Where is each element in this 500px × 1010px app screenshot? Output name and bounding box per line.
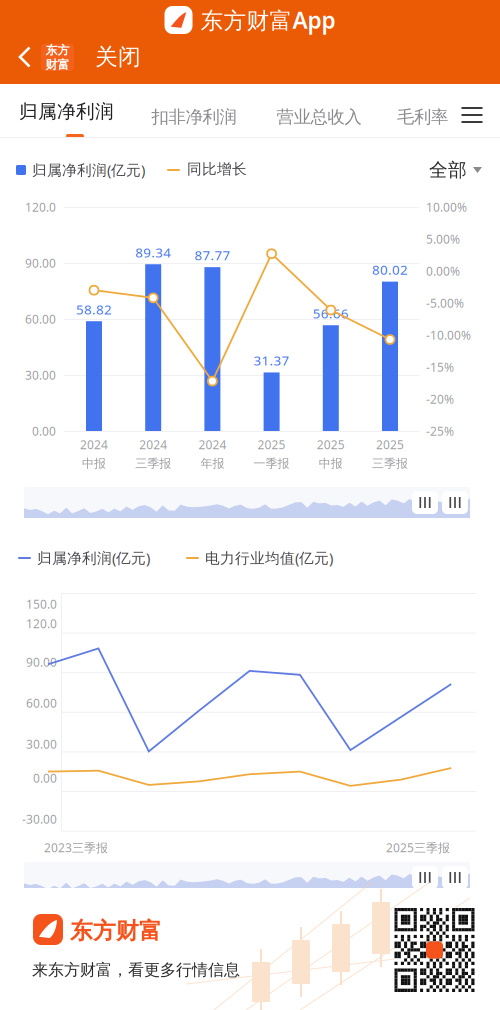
staticText: 关闭 <box>95 43 141 71</box>
staticText: 归属净利润 <box>19 100 114 123</box>
staticText: 2025 <box>317 436 345 452</box>
staticText: 2024 <box>80 436 108 452</box>
staticText: 东方财富App <box>200 5 335 35</box>
staticText: 同比增长 <box>187 160 247 178</box>
button[interactable]: Back <box>8 37 42 77</box>
button[interactable]: 全部 <box>410 152 482 188</box>
staticText: 2024 <box>139 436 167 452</box>
staticText: 87.77 <box>194 246 230 264</box>
button[interactable]: Range handle <box>442 491 468 514</box>
staticText: 60.00 <box>26 695 57 711</box>
staticText: 80.02 <box>372 261 408 278</box>
staticText: 89.34 <box>135 243 171 261</box>
button[interactable]: 毛利率 <box>397 84 455 138</box>
staticText: 毛利率 <box>397 106 448 128</box>
staticText: 东方财富 <box>70 917 162 945</box>
staticText: 中报 <box>82 456 106 471</box>
staticText: 2025 <box>258 436 286 452</box>
button[interactable]: 扣非净利润 <box>146 84 242 138</box>
staticText: 5.00% <box>426 231 460 247</box>
staticText: 财富 <box>45 57 69 72</box>
staticText: -15% <box>426 359 454 375</box>
staticText: 30.00 <box>25 367 56 383</box>
staticText: 10.00% <box>426 199 467 215</box>
staticText: 90.00 <box>25 255 56 271</box>
staticText: 三季报 <box>372 456 408 471</box>
staticText: 归属净利润(亿元) <box>37 548 150 567</box>
staticText: 全部 <box>429 158 467 181</box>
staticText: -5.00% <box>426 295 464 311</box>
staticText: 东方 <box>45 43 69 57</box>
staticText: 2023三季报 <box>44 840 108 855</box>
staticText: 90.00 <box>26 654 57 670</box>
staticText: 三季报 <box>135 456 171 471</box>
staticText: 0.00 <box>33 770 57 786</box>
staticText: 2025 <box>376 436 404 452</box>
staticText: 120.0 <box>25 199 56 215</box>
staticText: 电力行业均值(亿元) <box>205 548 333 567</box>
staticText: 归属净利润(亿元) <box>32 160 145 179</box>
button[interactable]: Range handle <box>412 491 438 514</box>
staticText: 一季报 <box>254 456 290 471</box>
staticText: -10.00% <box>426 327 471 343</box>
button[interactable]: More tabs <box>452 84 492 138</box>
staticText: 2025三季报 <box>386 840 450 855</box>
button[interactable]: Range handle <box>412 866 438 889</box>
staticText: 30.00 <box>26 736 57 752</box>
staticText: 来东方财富，看更多行情信息 <box>32 960 240 980</box>
button[interactable]: Range handle <box>442 866 468 889</box>
staticText: 31.37 <box>254 352 290 369</box>
staticText: 中报 <box>319 456 343 471</box>
staticText: -25% <box>426 423 454 439</box>
button[interactable]: 营业总收入 <box>271 84 367 138</box>
button[interactable]: 关闭 <box>92 37 144 77</box>
staticText: -20% <box>426 391 454 407</box>
staticText: 扣非净利润 <box>151 106 236 128</box>
staticText: 0.00 <box>32 423 56 439</box>
staticText: 58.82 <box>76 300 112 318</box>
staticText: 60.00 <box>25 311 56 327</box>
button[interactable]: 归属净利润 <box>19 84 119 138</box>
staticText: -30.00 <box>22 811 57 827</box>
staticText: 56.66 <box>313 304 349 322</box>
staticText: 年报 <box>200 456 224 471</box>
staticText: 120.0 <box>26 615 57 631</box>
staticText: 150.0 <box>26 596 57 612</box>
staticText: 营业总收入 <box>276 106 361 128</box>
staticText: 0.00% <box>426 263 460 279</box>
staticText: 2024 <box>198 436 226 452</box>
